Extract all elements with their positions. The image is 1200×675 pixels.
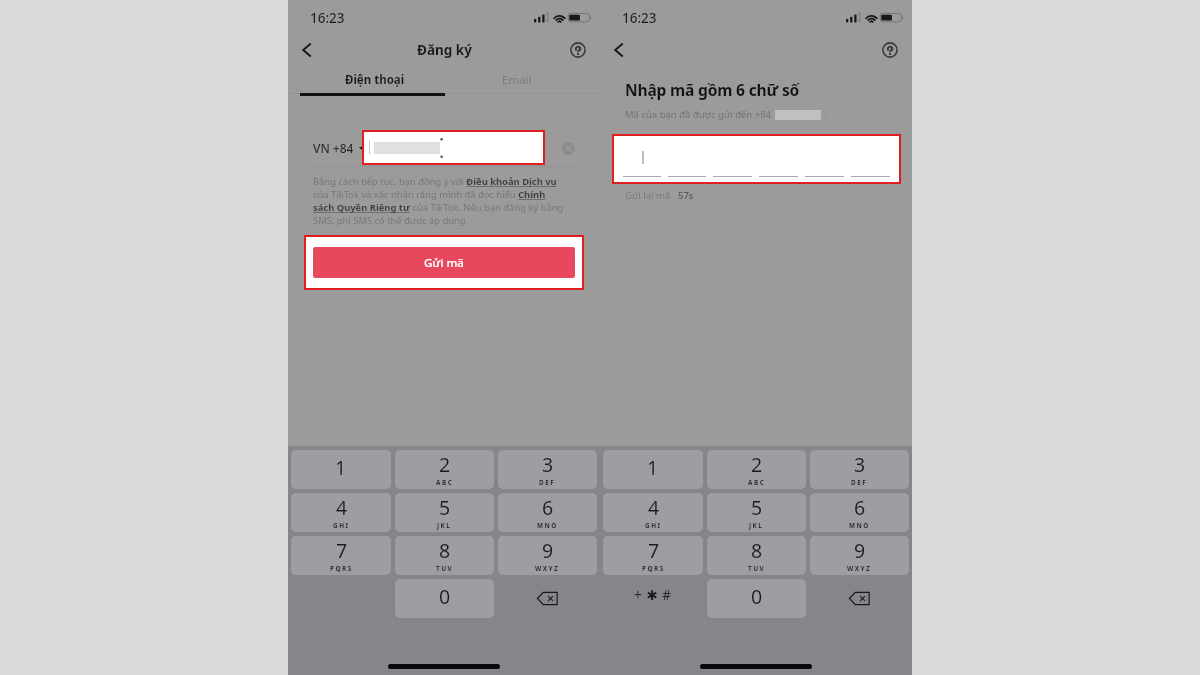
staticText: Mã của bạn đã được gửi đến +84 [625,108,771,121]
staticText: 1 [647,454,659,481]
staticText: 2 [439,451,451,478]
button[interactable]: 2 [707,450,806,489]
staticText: TUV [436,564,454,573]
staticText: 3 [854,451,866,478]
button[interactable]: Back [295,38,319,62]
staticText: 9 [854,537,866,564]
staticText: 0 [439,583,451,610]
button[interactable]: 3 [498,450,597,489]
staticText: 16:23 [622,9,657,27]
button[interactable]: Help [878,38,902,62]
staticText: Điện thoại [345,72,405,88]
staticText: Nhập mã gồm 6 chữ số [625,79,800,100]
staticText: 4 [648,494,660,521]
button[interactable]: Điện thoại [288,66,444,93]
button[interactable]: 6 [810,493,909,532]
staticText: MNO [537,521,558,530]
staticText: 9 [542,537,554,564]
staticText: Đăng ký [417,41,472,59]
staticText: ABC [748,478,766,487]
staticText: 1 [335,454,347,481]
staticText: WXYZ [847,564,872,573]
button[interactable]: Help [566,38,590,62]
button[interactable]: 0 [395,579,494,618]
button[interactable]: Back [607,38,631,62]
button[interactable]: 5 [395,493,494,532]
staticText: 7 [336,537,348,564]
staticText: DEF [851,478,868,487]
staticText: 3 [542,451,554,478]
button[interactable]: 4 [291,493,391,532]
button[interactable]: 5 [707,493,806,532]
staticText: 2 [751,451,763,478]
button[interactable]: 7 [603,536,703,575]
staticText: JKL [749,521,764,530]
button[interactable]: Email [444,66,600,93]
staticText: 16:23 [310,9,345,27]
button[interactable]: Symbols [603,579,703,618]
staticText: GHI [645,521,662,530]
button[interactable]: 6 [498,493,597,532]
staticText: 57s [678,189,694,202]
staticText: Email [502,72,532,88]
staticText: 6 [854,494,866,521]
staticText: VN +84 [313,140,354,156]
staticText: 6 [542,494,554,521]
button[interactable]: 9 [498,536,597,575]
staticText: 0 [751,583,763,610]
staticText: GHI [333,521,350,530]
button[interactable]: Select country code [313,140,366,156]
staticText: TUV [748,564,766,573]
button[interactable]: 7 [291,536,391,575]
staticText: + ✱ # [634,586,673,604]
staticText: Gửi lại mã [625,189,671,202]
staticText: MNO [849,521,870,530]
staticText: 5 [439,494,451,521]
staticText: DEF [539,478,556,487]
button[interactable]: Gửi mã [313,247,575,278]
button[interactable]: 2 [395,450,494,489]
button[interactable]: 1 [291,450,391,489]
staticText: 8 [439,537,451,564]
staticText: JKL [437,521,452,530]
staticText: PQRS [330,564,353,573]
button[interactable]: Gửi lại mã [625,189,694,202]
button[interactable]: 4 [603,493,703,532]
button[interactable]: 0 [707,579,806,618]
button[interactable]: Clear [562,142,575,155]
button[interactable]: 8 [395,536,494,575]
button[interactable]: Backspace [810,579,909,618]
staticText: 4 [336,494,348,521]
staticText: 5 [751,494,763,521]
staticText: 7 [648,537,660,564]
staticText: Gửi mã [424,255,464,271]
staticText: 8 [751,537,763,564]
button[interactable]: 1 [603,450,703,489]
staticText: . [824,108,827,121]
button[interactable]: 8 [707,536,806,575]
staticText: WXYZ [535,564,560,573]
button[interactable]: 9 [810,536,909,575]
staticText: Bằng cách tiếp tục, bạn đồng ý với Điều … [313,175,564,227]
button[interactable]: 3 [810,450,909,489]
button[interactable]: Backspace [498,579,597,618]
staticText: PQRS [642,564,665,573]
staticText: ABC [436,478,454,487]
